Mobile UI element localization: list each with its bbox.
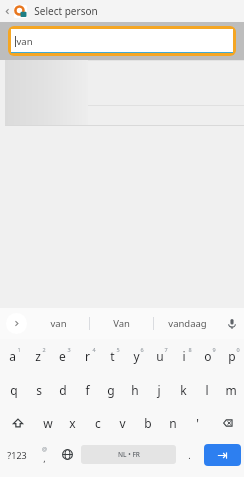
button[interactable]: q bbox=[1, 373, 26, 406]
button[interactable]: t bbox=[100, 339, 124, 373]
button[interactable]: d bbox=[51, 373, 75, 406]
staticText: u bbox=[156, 348, 164, 364]
staticText: ?123 bbox=[7, 449, 27, 461]
staticText: l bbox=[205, 382, 209, 398]
staticText: r bbox=[85, 348, 90, 364]
button[interactable]: l bbox=[195, 373, 219, 406]
button[interactable]: v bbox=[110, 406, 135, 439]
button[interactable]: Change language bbox=[56, 439, 79, 470]
button[interactable]: a bbox=[0, 339, 25, 373]
staticText: q bbox=[10, 382, 18, 398]
button[interactable]: f bbox=[75, 373, 99, 406]
staticText: i bbox=[182, 348, 186, 364]
button[interactable]: e bbox=[50, 339, 75, 373]
staticText: j bbox=[157, 382, 161, 398]
button[interactable]: n bbox=[160, 406, 185, 439]
staticText: 8 bbox=[188, 346, 192, 353]
staticText: s bbox=[36, 382, 42, 398]
button[interactable]: . bbox=[178, 439, 201, 470]
staticText: van bbox=[50, 317, 67, 330]
staticText: y bbox=[133, 348, 140, 364]
button[interactable]: k bbox=[171, 373, 195, 406]
button[interactable]: More suggestions bbox=[6, 313, 27, 334]
staticText: n bbox=[169, 415, 177, 431]
staticText: 4 bbox=[92, 346, 96, 353]
button[interactable]: o bbox=[196, 339, 220, 373]
staticText: 9 bbox=[212, 346, 216, 353]
button[interactable] bbox=[88, 106, 244, 126]
button[interactable]: van bbox=[27, 308, 89, 339]
staticText: . bbox=[188, 449, 191, 461]
button[interactable]: x bbox=[60, 406, 85, 439]
button[interactable]: b bbox=[135, 406, 160, 439]
button[interactable]: i bbox=[172, 339, 196, 373]
staticText: van bbox=[16, 35, 33, 48]
staticText: t bbox=[110, 348, 115, 364]
button[interactable]: w bbox=[35, 406, 60, 439]
button[interactable]: Backspace bbox=[210, 406, 244, 439]
staticText: z bbox=[35, 348, 41, 364]
staticText: @ bbox=[42, 445, 47, 452]
staticText: k bbox=[180, 382, 187, 398]
button[interactable]: y bbox=[124, 339, 148, 373]
button[interactable]: ?123 bbox=[0, 439, 33, 470]
staticText: NL • FR bbox=[118, 450, 140, 459]
staticText: 7 bbox=[164, 346, 168, 353]
staticText: h bbox=[131, 382, 139, 398]
button[interactable]: van bbox=[8, 26, 236, 56]
staticText: 6 bbox=[140, 346, 144, 353]
button[interactable]: r bbox=[75, 339, 100, 373]
staticText: 0 bbox=[236, 346, 240, 353]
button[interactable]: h bbox=[123, 373, 147, 406]
staticText: 3 bbox=[67, 346, 71, 353]
staticText: a bbox=[9, 348, 16, 364]
button[interactable]: Next bbox=[204, 444, 241, 466]
button[interactable]: Shift bbox=[0, 406, 35, 439]
button[interactable]: ' bbox=[185, 406, 210, 439]
button[interactable]: c bbox=[85, 406, 110, 439]
staticText: 5 bbox=[116, 346, 120, 353]
staticText: e bbox=[59, 348, 66, 364]
button[interactable]: g bbox=[99, 373, 123, 406]
staticText: d bbox=[59, 382, 67, 398]
button[interactable]: Van bbox=[90, 308, 153, 339]
staticText: 2 bbox=[42, 346, 46, 353]
button[interactable]: Back bbox=[0, 0, 14, 22]
staticText: vandaag bbox=[168, 317, 207, 330]
staticText: c bbox=[95, 415, 101, 431]
button[interactable]: Space bbox=[81, 445, 176, 464]
staticText: m bbox=[225, 382, 237, 398]
button[interactable]: Voice input bbox=[220, 308, 244, 339]
staticText: g bbox=[107, 382, 115, 398]
staticText: w bbox=[43, 415, 53, 431]
staticText: , bbox=[43, 452, 46, 464]
button[interactable]: j bbox=[147, 373, 171, 406]
button[interactable]: Comma and symbols bbox=[33, 439, 56, 470]
staticText: x bbox=[69, 415, 76, 431]
staticText: p bbox=[228, 348, 236, 364]
button[interactable]: m bbox=[219, 373, 243, 406]
staticText: o bbox=[204, 348, 212, 364]
button[interactable]: s bbox=[26, 373, 51, 406]
staticText: Van bbox=[113, 317, 130, 330]
button[interactable]: z bbox=[25, 339, 50, 373]
staticText: v bbox=[119, 415, 126, 431]
staticText: f bbox=[85, 382, 90, 398]
button[interactable]: vandaag bbox=[154, 308, 220, 339]
button[interactable]: u bbox=[148, 339, 172, 373]
staticText: b bbox=[144, 415, 152, 431]
button[interactable]: p bbox=[220, 339, 244, 373]
staticText: Select person bbox=[34, 4, 98, 18]
staticText: ' bbox=[196, 415, 199, 431]
staticText: 1 bbox=[17, 346, 21, 353]
